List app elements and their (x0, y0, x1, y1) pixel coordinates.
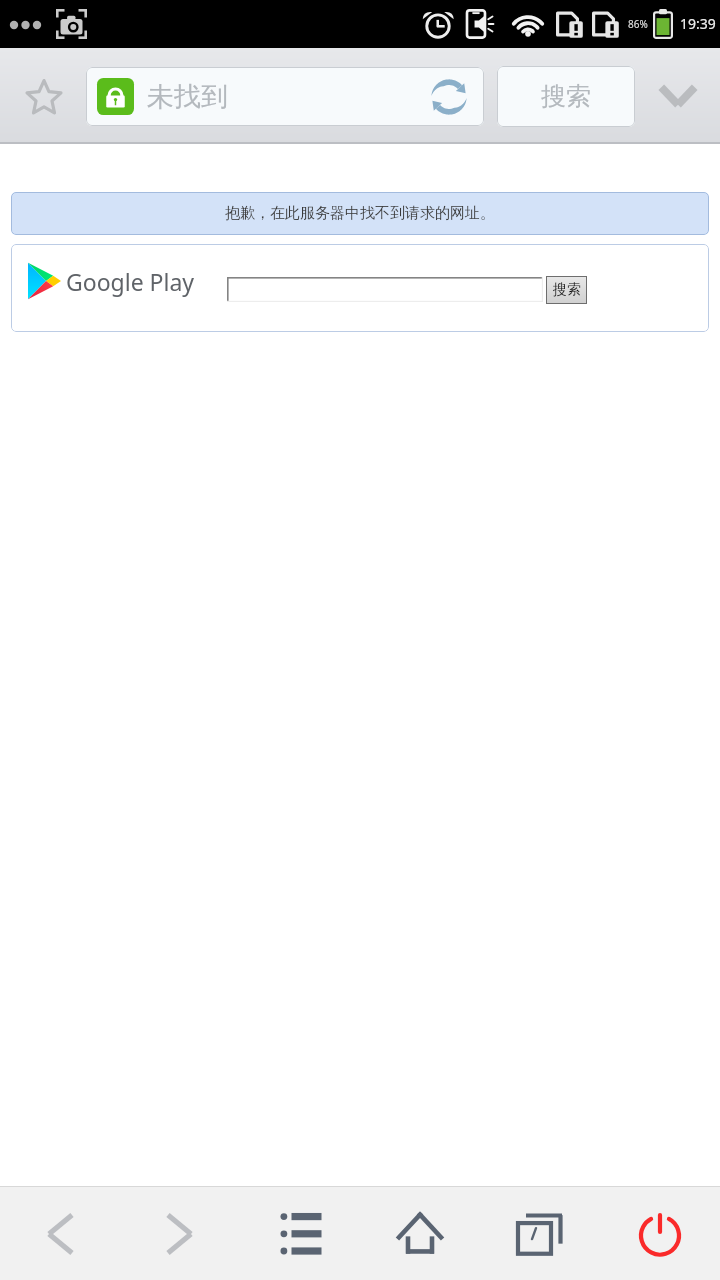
staticText: Google Play (66, 266, 195, 297)
button[interactable]: Expand toolbar (640, 48, 720, 144)
staticText: 搜索 (541, 81, 591, 112)
staticText: 86% (628, 17, 648, 31)
button[interactable]: Forward (125, 1187, 235, 1280)
button[interactable]: 未找到 (86, 67, 484, 126)
button[interactable]: Bookmark (0, 48, 86, 144)
button[interactable]: 搜索 (497, 66, 635, 127)
staticText: 未找到 (147, 80, 228, 114)
button[interactable]: Menu (246, 1187, 356, 1280)
button[interactable]: Power off (605, 1187, 715, 1280)
button[interactable]: Windows (485, 1187, 595, 1280)
button[interactable]: Home (365, 1187, 475, 1280)
staticText: 搜索 (553, 281, 581, 299)
button[interactable]: 搜索 (546, 276, 587, 304)
staticText: 19:39 (680, 14, 716, 33)
button[interactable] (227, 277, 543, 302)
button[interactable]: Back (5, 1187, 115, 1280)
staticText: 抱歉，在此服务器中找不到请求的网址。 (225, 204, 495, 223)
